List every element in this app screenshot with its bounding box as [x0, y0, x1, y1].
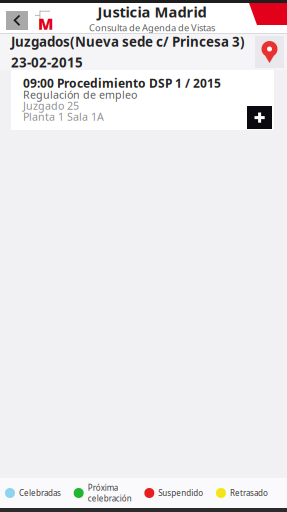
staticText: Regulación de empleo: [23, 87, 137, 102]
staticText: Celebradas: [19, 488, 61, 498]
staticText: Juzgado 25: [23, 98, 79, 113]
staticText: Planta 1 Sala 1A: [23, 109, 104, 124]
button[interactable]: Atrás: [6, 11, 28, 30]
staticText: Consulta de Agenda de Vistas: [89, 21, 215, 34]
staticText: Justicia Madrid: [97, 2, 206, 22]
button[interactable]: Ver en el mapa: [255, 36, 284, 68]
staticText: Retrasado: [230, 488, 268, 498]
staticText: 23-02-2015: [11, 53, 83, 71]
staticText: Suspendido: [158, 488, 203, 498]
staticText: M: [38, 13, 53, 34]
staticText: celebración: [88, 493, 132, 504]
staticText: Próxima: [88, 482, 118, 493]
staticText: Juzgados(Nueva sede c/ Princesa 3): [11, 33, 245, 50]
staticText: 09:00 Procedimiento DSP 1 / 2015: [23, 75, 221, 91]
button[interactable]: Añadir al calendario: [247, 106, 272, 129]
